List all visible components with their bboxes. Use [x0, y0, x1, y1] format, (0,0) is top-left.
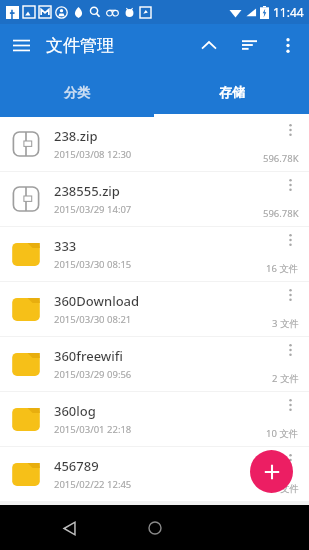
button[interactable]: 分类	[0, 66, 154, 117]
button[interactable]: More options for 360freewifi	[279, 340, 301, 360]
staticText: 596.78K	[263, 152, 299, 165]
button[interactable]: More options for 238555.zip	[279, 175, 301, 195]
staticText: 360freewifi	[54, 347, 123, 365]
staticText: 2015/03/29 09:56	[54, 368, 132, 381]
staticText: 10 文件	[266, 427, 299, 440]
button[interactable]: 238555.zip	[0, 172, 309, 226]
staticText: 存储	[219, 84, 245, 100]
staticText: 333	[54, 237, 77, 255]
button[interactable]: Menu	[0, 24, 42, 66]
staticText: 2015/03/30 08:15	[54, 258, 132, 271]
staticText: 2015/03/01 22:18	[54, 423, 132, 436]
staticText: 11:44	[273, 4, 304, 20]
button[interactable]: More options for 238.zip	[279, 120, 301, 140]
staticText: 2015/02/22 12:45	[54, 478, 132, 491]
button[interactable]: Back	[52, 511, 86, 545]
button[interactable]: More options for 360Download	[279, 285, 301, 305]
button[interactable]: More options for 456789	[279, 450, 301, 470]
button[interactable]: 456789	[0, 447, 309, 501]
button[interactable]: More options	[269, 26, 307, 64]
staticText: 16 文件	[266, 262, 299, 275]
button[interactable]: More options for 360log	[279, 395, 301, 415]
staticText: 360log	[54, 402, 96, 420]
button[interactable]: 360log	[0, 392, 309, 446]
staticText: 文件管理	[46, 35, 114, 56]
button[interactable]: More options for 333	[279, 230, 301, 250]
button[interactable]: Collapse	[189, 25, 229, 65]
staticText: 分类	[64, 84, 90, 100]
button[interactable]: Home	[138, 511, 172, 545]
button[interactable]: Add	[250, 450, 293, 493]
staticText: 2015/03/29 14:07	[54, 203, 132, 216]
staticText: 2015/03/08 12:30	[54, 148, 132, 161]
button[interactable]: 存储	[154, 66, 309, 117]
staticText: 596.78K	[263, 207, 299, 220]
button[interactable]: Sort	[229, 25, 269, 65]
staticText: 3 文件	[272, 317, 299, 330]
staticText: 2 文件	[272, 372, 299, 385]
staticText: 238.zip	[54, 127, 98, 145]
button[interactable]: 333	[0, 227, 309, 281]
button[interactable]: 360freewifi	[0, 337, 309, 391]
button[interactable]: 238.zip	[0, 117, 309, 171]
staticText: 2015/03/30 08:21	[54, 313, 132, 326]
button[interactable]: 360Download	[0, 282, 309, 336]
staticText: 360Download	[54, 292, 140, 310]
staticText: 238555.zip	[54, 182, 120, 200]
staticText: 456789	[54, 457, 99, 475]
staticText: 6 文件	[272, 482, 299, 495]
